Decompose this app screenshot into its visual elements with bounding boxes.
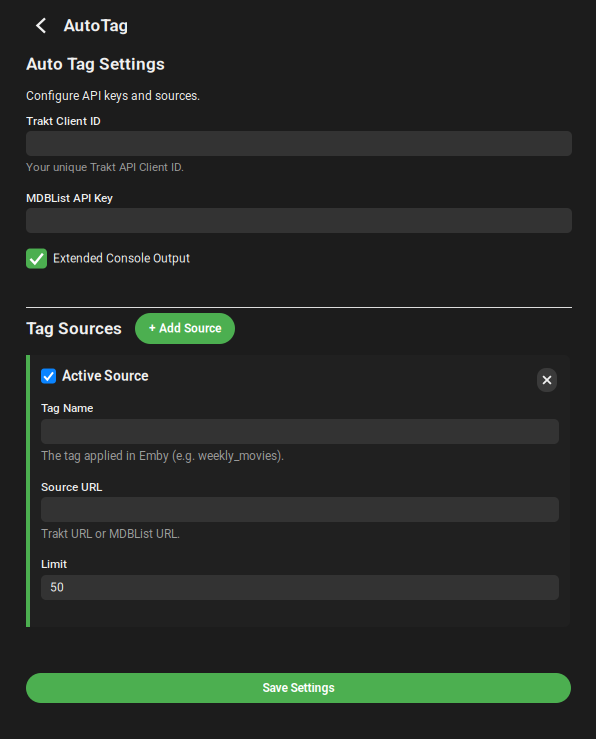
- button[interactable]: AutoTag: [36, 15, 128, 36]
- staticText: Tag Sources: [26, 318, 122, 338]
- staticText: MDBList API Key: [26, 191, 113, 205]
- button[interactable]: Save Settings: [26, 673, 571, 703]
- button[interactable]: + Add Source: [135, 313, 235, 344]
- button[interactable]: Extended Console Output: [26, 248, 190, 269]
- staticText: The tag applied in Emby (e.g. weekly_mov…: [41, 449, 284, 463]
- staticText: Source URL: [41, 480, 102, 494]
- staticText: Extended Console Output: [53, 251, 190, 266]
- staticText: Active Source: [62, 368, 148, 384]
- staticText: Your unique Trakt API Client ID.: [26, 160, 184, 174]
- staticText: Tag Name: [41, 401, 93, 415]
- staticText: Limit: [41, 557, 67, 571]
- staticText: Trakt Client ID: [26, 114, 101, 128]
- staticText: Save Settings: [262, 681, 334, 695]
- staticText: AutoTag: [63, 15, 128, 35]
- button[interactable]: Remove source: [537, 368, 557, 392]
- staticText: Configure API keys and sources.: [26, 89, 200, 103]
- staticText: Auto Tag Settings: [26, 54, 165, 74]
- staticText: + Add Source: [149, 321, 221, 336]
- staticText: Trakt URL or MDBList URL.: [41, 527, 180, 541]
- button[interactable]: Active Source: [41, 367, 148, 385]
- staticText: 50: [50, 580, 64, 595]
